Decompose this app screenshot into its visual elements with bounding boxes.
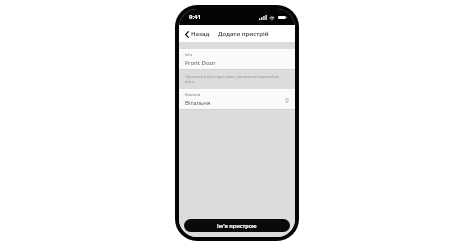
staticText: Ім'я пристрою	[217, 222, 257, 229]
button[interactable]: Ім'я пристрою	[184, 219, 290, 232]
staticText: Вітальня	[185, 99, 211, 107]
staticText: Front Door	[185, 59, 216, 67]
staticText: Ім'я	[185, 52, 193, 57]
staticText: Призначте ім'я пристрою, допомагає вираз…	[185, 74, 289, 84]
button[interactable]: Назад	[184, 28, 211, 40]
staticText: Кімната	[185, 92, 201, 97]
other: Select room	[285, 97, 289, 104]
staticText: 9:41	[189, 13, 201, 21]
staticText: Додати пристрій	[218, 30, 269, 38]
button[interactable]: Кімната	[179, 89, 295, 109]
staticText: Назад	[191, 30, 210, 38]
button[interactable]: Ім'я	[179, 49, 295, 69]
